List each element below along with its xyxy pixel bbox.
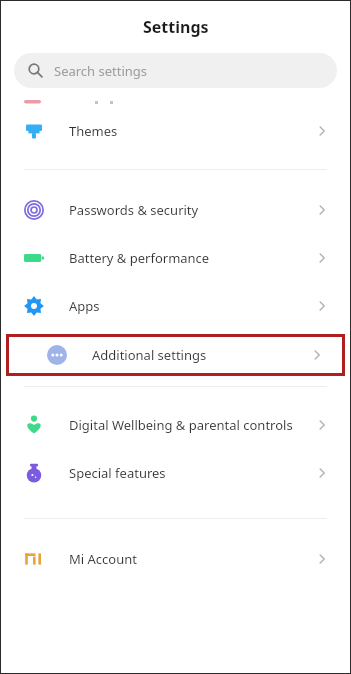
staticText: Special features <box>69 464 315 482</box>
other: Open Mi Account <box>315 552 329 566</box>
staticText: Battery & performance <box>69 249 315 267</box>
staticText: Themes <box>69 122 315 140</box>
staticText: Apps <box>69 297 315 315</box>
staticText: Additional settings <box>92 346 310 364</box>
staticText: Mi Account <box>69 550 315 568</box>
other: Open Battery & performance <box>315 251 329 265</box>
other: Open Themes <box>315 124 329 138</box>
button[interactable]: Mi Account <box>1 535 350 583</box>
button[interactable]: Battery & performance <box>1 234 350 282</box>
staticText: Settings <box>143 16 209 38</box>
other: Open Passwords & security <box>315 203 329 217</box>
button[interactable]: Search settings <box>14 53 337 88</box>
other: Open Apps <box>315 299 329 313</box>
button[interactable] <box>1 88 350 107</box>
button[interactable]: Digital Wellbeing & parental controls <box>1 401 350 449</box>
other: Open Special features <box>315 466 329 480</box>
other: Open Additional settings <box>310 348 324 362</box>
staticText: Passwords & security <box>69 201 315 219</box>
staticText: Search settings <box>54 62 148 80</box>
button[interactable]: Themes <box>1 107 350 155</box>
staticText: Digital Wellbeing & parental controls <box>69 416 315 434</box>
other: Open Digital Wellbeing & parental contro… <box>315 418 329 432</box>
button[interactable]: Apps <box>1 282 350 330</box>
button[interactable]: Passwords & security <box>1 186 350 234</box>
button[interactable]: Additional settings <box>6 334 345 376</box>
button[interactable]: Special features <box>1 449 350 497</box>
